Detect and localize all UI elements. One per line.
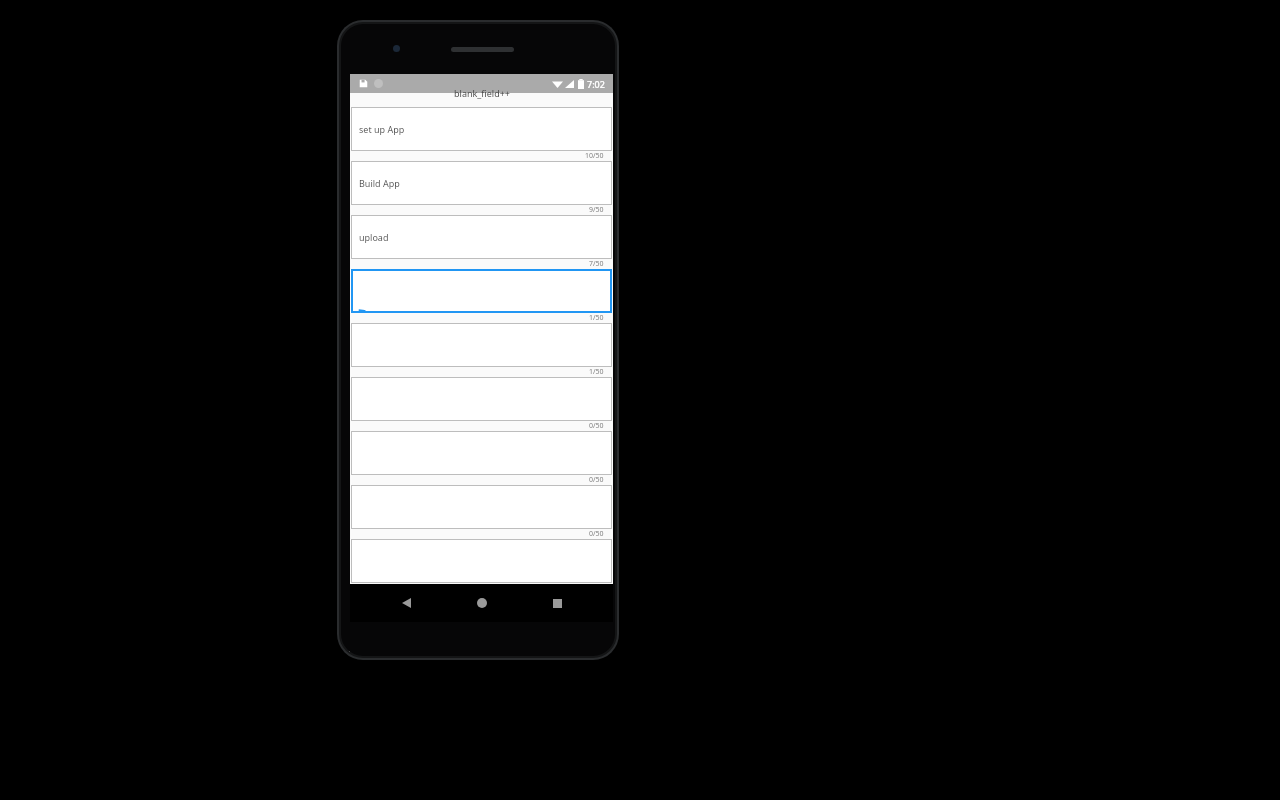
staticText: 0/50	[589, 421, 604, 431]
staticText: 7/50	[589, 259, 604, 269]
staticText: 1/50	[589, 367, 604, 377]
button[interactable]: Recent apps	[537, 588, 577, 618]
staticText: 0/50	[589, 529, 604, 539]
button[interactable]: Text cursor handle	[351, 269, 612, 313]
button[interactable]: set up App	[351, 107, 612, 151]
staticText: 0/50	[589, 475, 604, 485]
staticText: 10/50	[585, 151, 604, 161]
staticText: upload	[359, 231, 389, 243]
staticText: set up App	[359, 123, 405, 135]
staticText: 7:02	[587, 78, 605, 90]
button[interactable]: Home	[462, 588, 502, 618]
staticText: blank_field++	[454, 87, 510, 99]
button[interactable]	[351, 377, 612, 421]
button[interactable]	[351, 485, 612, 529]
button[interactable]	[351, 431, 612, 475]
button[interactable]	[351, 323, 612, 367]
button[interactable]: upload	[351, 215, 612, 259]
staticText: 9/50	[589, 205, 604, 215]
button[interactable]: Back	[386, 588, 426, 618]
staticText: 1/50	[589, 313, 604, 323]
button[interactable]	[351, 539, 612, 583]
button[interactable]: Build App	[351, 161, 612, 205]
other: Text cursor handle	[358, 307, 370, 319]
staticText: Build App	[359, 177, 400, 189]
